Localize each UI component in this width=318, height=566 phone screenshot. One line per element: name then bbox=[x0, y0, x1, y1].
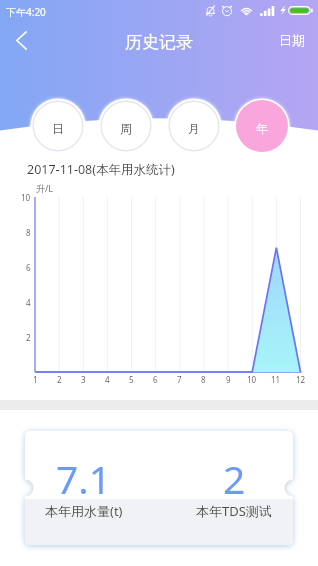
staticText: 7 bbox=[177, 374, 182, 385]
staticText: 12 bbox=[296, 374, 306, 385]
staticText: 10 bbox=[247, 374, 257, 385]
button[interactable]: 2 bbox=[184, 431, 284, 545]
button[interactable]: 7.1 bbox=[34, 431, 134, 545]
staticText: 2 bbox=[223, 452, 246, 505]
staticText: 1 bbox=[33, 374, 38, 385]
staticText: 周 bbox=[120, 121, 132, 136]
staticText: 本年用水量(t) bbox=[45, 502, 123, 520]
staticText: 升/L bbox=[36, 182, 54, 194]
staticText: 4 bbox=[105, 374, 110, 385]
staticText: 10 bbox=[21, 192, 31, 203]
staticText: 2 bbox=[57, 374, 62, 385]
button[interactable]: 日期 bbox=[274, 28, 310, 52]
staticText: 4 bbox=[26, 297, 31, 308]
staticText: 月 bbox=[188, 121, 200, 136]
staticText: 3 bbox=[81, 374, 86, 385]
staticText: 7.1 bbox=[56, 452, 112, 505]
button[interactable]: 周 bbox=[97, 97, 155, 155]
staticText: 6 bbox=[153, 374, 158, 385]
button[interactable]: 年 bbox=[233, 97, 291, 155]
button[interactable]: 日 bbox=[29, 97, 87, 155]
staticText: 下午4:20 bbox=[6, 5, 46, 19]
button[interactable]: 月 bbox=[165, 97, 223, 155]
staticText: 11 bbox=[271, 374, 281, 385]
staticText: 年 bbox=[256, 121, 268, 136]
staticText: 6 bbox=[26, 262, 31, 273]
staticText: 历史记录 bbox=[125, 32, 193, 53]
staticText: 8 bbox=[26, 227, 31, 238]
staticText: 2017-11-08(本年用水统计) bbox=[27, 161, 175, 178]
staticText: 5 bbox=[129, 374, 134, 385]
staticText: 8 bbox=[201, 374, 206, 385]
staticText: 日期 bbox=[279, 32, 305, 48]
staticText: 9 bbox=[226, 374, 231, 385]
staticText: 2 bbox=[26, 332, 31, 343]
staticText: 本年TDS测试 bbox=[196, 502, 272, 520]
staticText: 日 bbox=[52, 121, 64, 136]
button[interactable]: Back bbox=[2, 21, 40, 59]
